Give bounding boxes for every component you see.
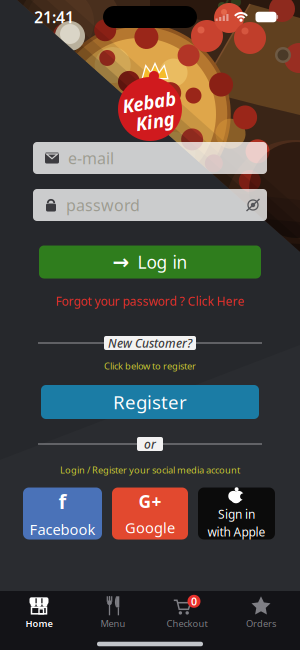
staticText: Facebook bbox=[29, 519, 95, 539]
button[interactable]: Home bbox=[2, 593, 76, 633]
staticText: 0 bbox=[191, 594, 197, 608]
staticText: Google bbox=[125, 518, 175, 537]
button[interactable]: Menu bbox=[76, 593, 150, 633]
secureTextField[interactable]: password bbox=[66, 194, 235, 216]
staticText: Click below to register bbox=[104, 360, 196, 372]
staticText: 21:41 bbox=[34, 6, 74, 28]
button[interactable]: f bbox=[23, 487, 102, 539]
staticText: password bbox=[66, 194, 140, 216]
staticText: e-mail bbox=[68, 147, 114, 169]
staticText: Kebab bbox=[122, 90, 176, 114]
staticText: Sign in bbox=[218, 506, 255, 522]
button[interactable]: Forgot your password ? Click Here bbox=[55, 293, 244, 309]
button[interactable]: G+ bbox=[112, 487, 188, 539]
button[interactable]: Sign in bbox=[198, 487, 275, 540]
staticText: with Apple bbox=[207, 524, 265, 540]
staticText: Orders bbox=[246, 617, 276, 630]
button[interactable]: Orders bbox=[224, 593, 298, 633]
staticText: Checkout bbox=[166, 617, 207, 630]
staticText: Register bbox=[113, 390, 187, 414]
staticText: King bbox=[135, 109, 174, 133]
button[interactable]: Show password bbox=[244, 198, 262, 211]
staticText: New Customer? bbox=[108, 335, 192, 351]
staticText: G+ bbox=[138, 490, 161, 513]
staticText: Menu bbox=[100, 617, 125, 630]
staticText: Login / Register your social media accou… bbox=[60, 464, 240, 476]
button[interactable]: 0 bbox=[150, 593, 224, 633]
button[interactable]: → bbox=[39, 245, 261, 278]
staticText: f bbox=[58, 488, 66, 515]
staticText: or bbox=[144, 436, 156, 452]
button[interactable]: Register bbox=[41, 385, 259, 419]
staticText: Home bbox=[25, 617, 52, 630]
staticText: Forgot your password ? Click Here bbox=[55, 293, 244, 309]
staticText: → bbox=[112, 251, 129, 273]
staticText: Log in bbox=[137, 250, 187, 273]
textField[interactable]: e-mail bbox=[68, 147, 267, 169]
